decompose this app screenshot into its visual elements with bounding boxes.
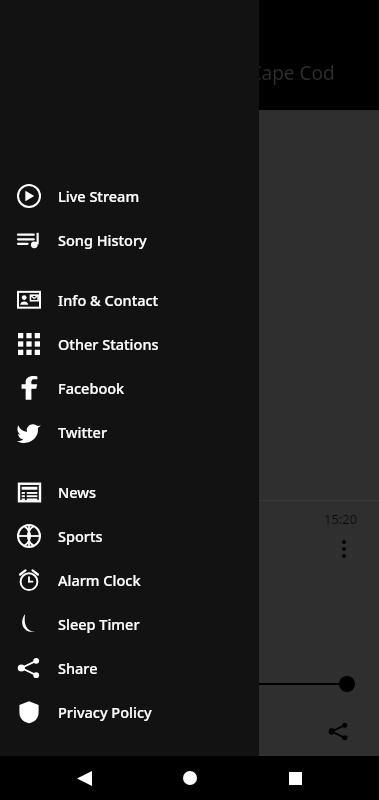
- staticText: 107.5 Cape Cod: [196, 60, 335, 86]
- button[interactable]: Info & Contact: [0, 278, 259, 322]
- button[interactable]: Share: [321, 714, 355, 748]
- button[interactable]: Other Stations: [0, 322, 259, 366]
- button[interactable]: Privacy Policy: [0, 690, 259, 734]
- button[interactable]: Alarm Clock: [0, 558, 259, 602]
- button[interactable]: Home: [168, 756, 212, 800]
- staticText: Twitter: [58, 422, 108, 442]
- button[interactable]: Twitter: [0, 410, 259, 454]
- button[interactable]: Sports: [0, 514, 259, 558]
- button[interactable]: Live Stream: [0, 174, 259, 218]
- staticText: News: [58, 482, 97, 502]
- button[interactable]: News: [0, 470, 259, 514]
- button[interactable]: Share: [0, 646, 259, 690]
- staticText: Sleep Timer: [58, 614, 140, 634]
- button[interactable]: More options: [331, 536, 357, 562]
- button[interactable]: Sleep Timer: [0, 602, 259, 646]
- staticText: Song History: [58, 230, 147, 250]
- staticText: Info & Contact: [58, 290, 159, 310]
- staticText: Other Stations: [58, 334, 159, 354]
- staticText: 15:20: [324, 510, 358, 528]
- staticText: Share: [58, 658, 98, 678]
- staticText: Alarm Clock: [58, 570, 141, 590]
- button[interactable]: Song History: [0, 218, 259, 262]
- button[interactable]: Back: [62, 756, 106, 800]
- staticText: Facebook: [58, 378, 125, 398]
- staticText: Sports: [58, 526, 103, 546]
- button[interactable]: Recent apps: [273, 756, 317, 800]
- staticText: Privacy Policy: [58, 702, 152, 722]
- staticText: Live Stream: [58, 186, 140, 206]
- button[interactable]: Facebook: [0, 366, 259, 410]
